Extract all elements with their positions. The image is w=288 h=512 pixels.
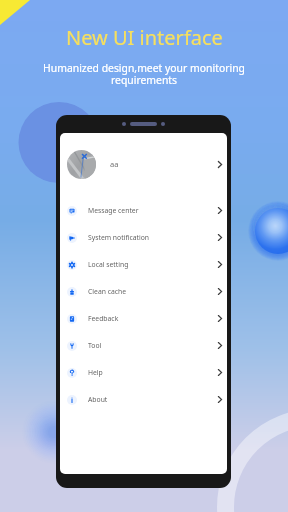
staticText: New UI interface xyxy=(66,24,223,51)
staticText: Clean cache xyxy=(88,287,127,296)
staticText: Humanized design,meet your monitoring re… xyxy=(43,61,245,87)
staticText: Help xyxy=(88,368,103,377)
button[interactable]: About xyxy=(60,386,227,413)
staticText: aa xyxy=(110,159,119,169)
button[interactable]: Help xyxy=(60,359,227,386)
staticText: System notification xyxy=(88,233,150,242)
staticText: Local setting xyxy=(88,260,129,269)
staticText: Message center xyxy=(88,206,139,215)
button[interactable]: System notification xyxy=(60,224,227,251)
button[interactable]: Tool xyxy=(60,332,227,359)
button[interactable]: Message center xyxy=(60,197,227,224)
staticText: About xyxy=(88,395,108,404)
button[interactable]: Feedback xyxy=(60,305,227,332)
button[interactable]: Clean cache xyxy=(60,278,227,305)
button[interactable]: Local setting xyxy=(60,251,227,278)
staticText: Tool xyxy=(88,341,102,350)
staticText: Feedback xyxy=(88,314,119,323)
button[interactable]: aa xyxy=(60,133,227,195)
